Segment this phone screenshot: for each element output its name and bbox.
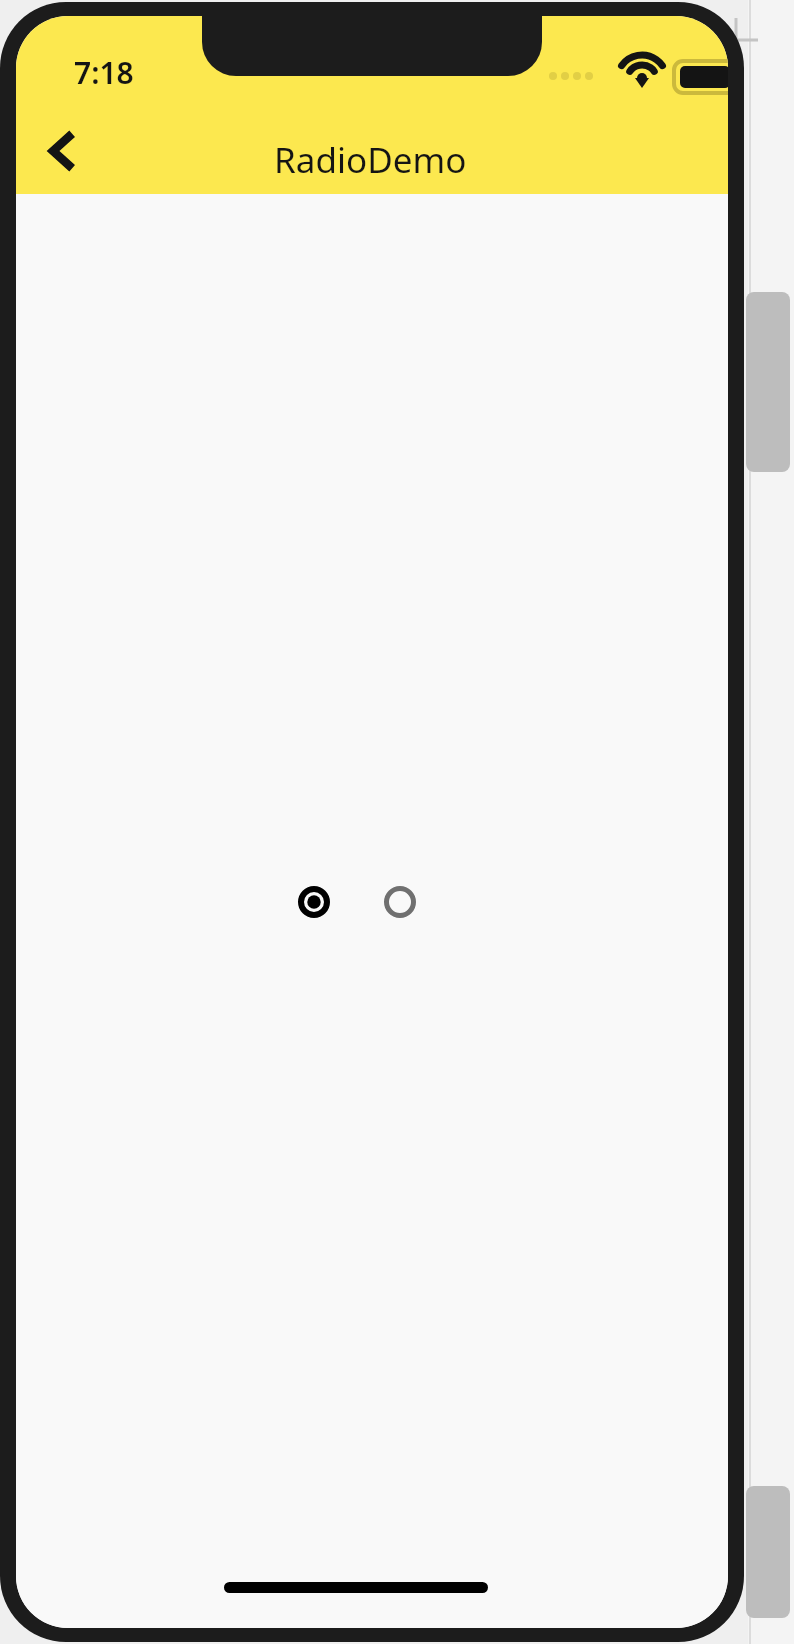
staticText: 7:18: [74, 52, 134, 93]
staticText: RadioDemo: [274, 136, 467, 184]
button[interactable]: Unselected option: [384, 886, 416, 918]
button[interactable]: Back: [24, 114, 98, 188]
button[interactable]: Selected option: [298, 886, 330, 918]
